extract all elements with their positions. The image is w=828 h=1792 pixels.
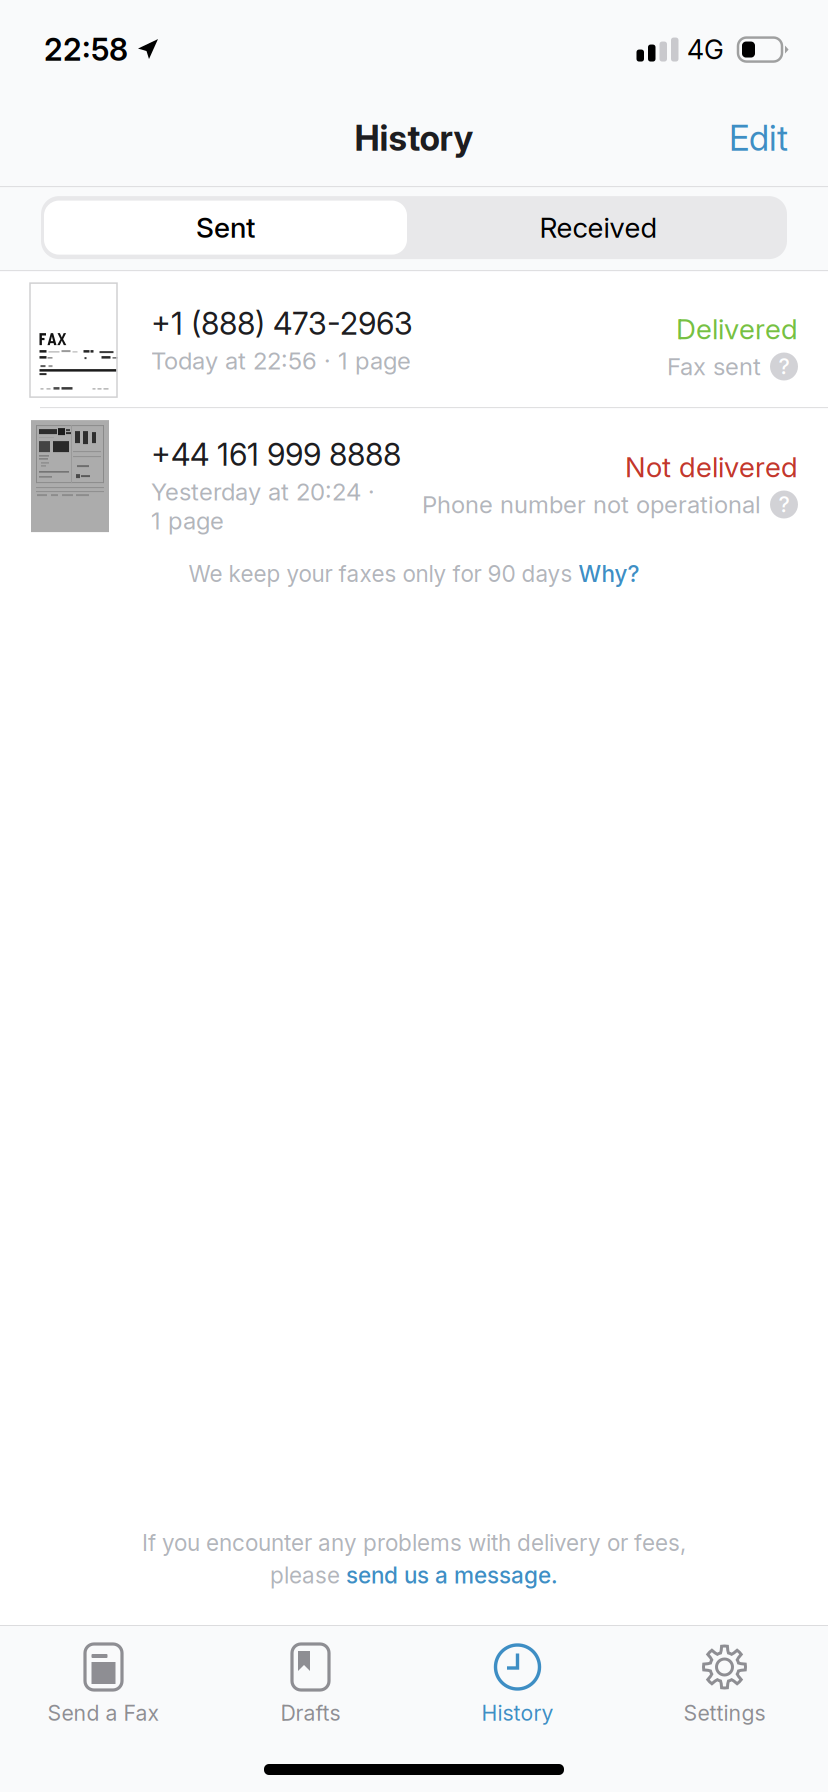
staticText: 22:58	[44, 31, 128, 68]
button[interactable]: More info	[770, 352, 798, 380]
staticText: History	[354, 117, 473, 159]
staticText: Fax sent	[667, 352, 761, 381]
button[interactable]: +1 (888) 473-2963	[0, 271, 828, 407]
staticText: 4G	[687, 33, 724, 66]
button[interactable]: +44 161 999 8888	[0, 408, 828, 543]
staticText: Yesterday at 20:24 · 1 page	[151, 477, 375, 535]
staticText: History	[481, 1700, 553, 1726]
staticText: Delivered	[676, 312, 798, 346]
button[interactable]: Send a Fax	[0, 1626, 207, 1737]
button[interactable]: send us a message.	[346, 1562, 558, 1589]
staticText: We keep your faxes only for 90 days	[188, 560, 578, 587]
staticText: Received	[539, 211, 657, 245]
button[interactable]: Edit	[713, 103, 804, 173]
staticText: Drafts	[280, 1700, 340, 1726]
staticText: +1 (888) 473-2963	[151, 305, 413, 342]
button[interactable]: History	[414, 1626, 621, 1737]
staticText: Edit	[729, 117, 788, 159]
staticText: Why?	[578, 560, 639, 587]
button[interactable]: Received	[410, 196, 787, 259]
staticText: Settings	[683, 1700, 765, 1726]
staticText: Send a Fax	[47, 1700, 159, 1726]
staticText: If you encounter any problems with deliv…	[142, 1529, 686, 1556]
staticText: ?	[778, 354, 789, 379]
button[interactable]: Settings	[621, 1626, 828, 1737]
staticText: +44 161 999 8888	[151, 436, 401, 473]
staticText: Phone number not operational	[422, 490, 761, 519]
staticText: please	[270, 1562, 346, 1589]
button[interactable]: More info	[770, 490, 798, 518]
staticText: Today at 22:56 · 1 page	[151, 346, 411, 375]
staticText: Sent	[196, 211, 255, 245]
button[interactable]: Why?	[578, 554, 639, 593]
staticText: send us a message.	[346, 1562, 558, 1589]
staticText: Not delivered	[625, 450, 798, 484]
button[interactable]: Drafts	[207, 1626, 414, 1737]
staticText: ?	[778, 492, 789, 517]
button[interactable]: Sent	[41, 196, 410, 259]
